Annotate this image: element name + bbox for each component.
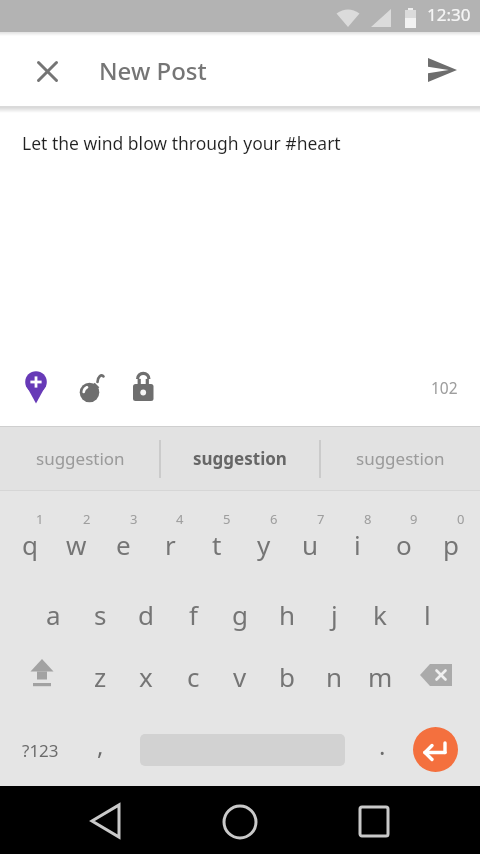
staticText: w <box>66 527 87 562</box>
staticText: 9 <box>410 510 418 528</box>
button[interactable]: p <box>428 518 474 570</box>
staticText: e <box>116 527 131 562</box>
staticText: q <box>22 527 38 562</box>
staticText: c <box>187 659 200 694</box>
staticText: ?123 <box>22 739 59 762</box>
staticText: b <box>279 659 295 694</box>
button[interactable]: v <box>217 650 263 702</box>
button[interactable]: y <box>241 518 287 570</box>
staticText: 1 <box>36 510 44 528</box>
button[interactable]: b <box>264 650 310 702</box>
staticText: 12:30 <box>427 3 471 26</box>
staticText: s <box>94 597 107 632</box>
button[interactable] <box>414 662 458 706</box>
button[interactable] <box>72 368 108 404</box>
staticText: d <box>138 597 154 632</box>
staticText: 8 <box>364 510 372 528</box>
staticText: 3 <box>130 510 138 528</box>
staticText: p <box>443 527 459 562</box>
button[interactable]: n <box>311 650 357 702</box>
staticText: Let the wind blow through your #heart <box>22 131 341 155</box>
button[interactable] <box>22 658 62 698</box>
staticText: f <box>189 597 198 632</box>
staticText: suggestion <box>36 447 125 470</box>
button[interactable]: x <box>123 650 169 702</box>
staticText: 102 <box>431 377 458 398</box>
staticText: New Post <box>99 54 207 87</box>
button[interactable] <box>413 727 458 772</box>
button[interactable]: suggestion <box>320 426 480 490</box>
staticText: h <box>279 597 296 632</box>
staticText: m <box>368 659 393 694</box>
button[interactable]: i <box>334 518 380 570</box>
button[interactable]: a <box>30 588 76 640</box>
button[interactable]: s <box>77 588 123 640</box>
staticText: suggestion <box>356 447 445 470</box>
button[interactable]: o <box>381 518 427 570</box>
staticText: suggestion <box>193 447 287 470</box>
button[interactable]: suggestion <box>160 426 320 490</box>
staticText: , <box>97 729 104 762</box>
button[interactable]: ?123 <box>5 725 75 775</box>
staticText: 4 <box>176 510 184 528</box>
button[interactable]: q <box>7 518 53 570</box>
button[interactable] <box>128 368 160 400</box>
staticText: v <box>233 659 247 694</box>
staticText: g <box>232 597 248 632</box>
button[interactable] <box>214 794 266 846</box>
staticText: y <box>257 527 271 562</box>
staticText: z <box>94 659 107 694</box>
staticText: x <box>139 659 153 694</box>
staticText: t <box>212 527 222 562</box>
staticText: 6 <box>270 510 278 528</box>
button[interactable]: suggestion <box>0 426 160 490</box>
button[interactable]: e <box>100 518 146 570</box>
button[interactable] <box>80 794 132 846</box>
staticText: i <box>354 527 361 562</box>
staticText: r <box>165 527 176 562</box>
staticText: 0 <box>457 510 465 528</box>
button[interactable] <box>348 794 400 846</box>
button[interactable]: r <box>147 518 193 570</box>
button[interactable] <box>18 364 56 402</box>
button[interactable]: z <box>77 650 123 702</box>
button[interactable]: , <box>80 720 120 770</box>
staticText: o <box>396 527 412 562</box>
button[interactable]: . <box>362 720 402 770</box>
button[interactable]: t <box>194 518 240 570</box>
staticText: j <box>331 597 338 632</box>
button[interactable] <box>30 54 66 90</box>
button[interactable]: c <box>170 650 216 702</box>
button[interactable]: m <box>357 650 403 702</box>
button[interactable]: w <box>53 518 99 570</box>
staticText: u <box>302 527 319 562</box>
button[interactable]: g <box>217 588 263 640</box>
button[interactable]: f <box>170 588 216 640</box>
button[interactable]: h <box>264 588 310 640</box>
button[interactable]: u <box>287 518 333 570</box>
staticText: k <box>373 597 387 632</box>
button[interactable] <box>420 52 464 96</box>
button[interactable]: l <box>404 588 450 640</box>
staticText: 2 <box>83 510 91 528</box>
staticText: 7 <box>317 510 325 528</box>
staticText: n <box>326 659 343 694</box>
button[interactable]: j <box>311 588 357 640</box>
staticText: 5 <box>223 510 231 528</box>
button[interactable]: d <box>123 588 169 640</box>
staticText: . <box>379 729 386 762</box>
staticText: a <box>46 597 61 632</box>
staticText: l <box>424 597 431 632</box>
button[interactable]: k <box>357 588 403 640</box>
